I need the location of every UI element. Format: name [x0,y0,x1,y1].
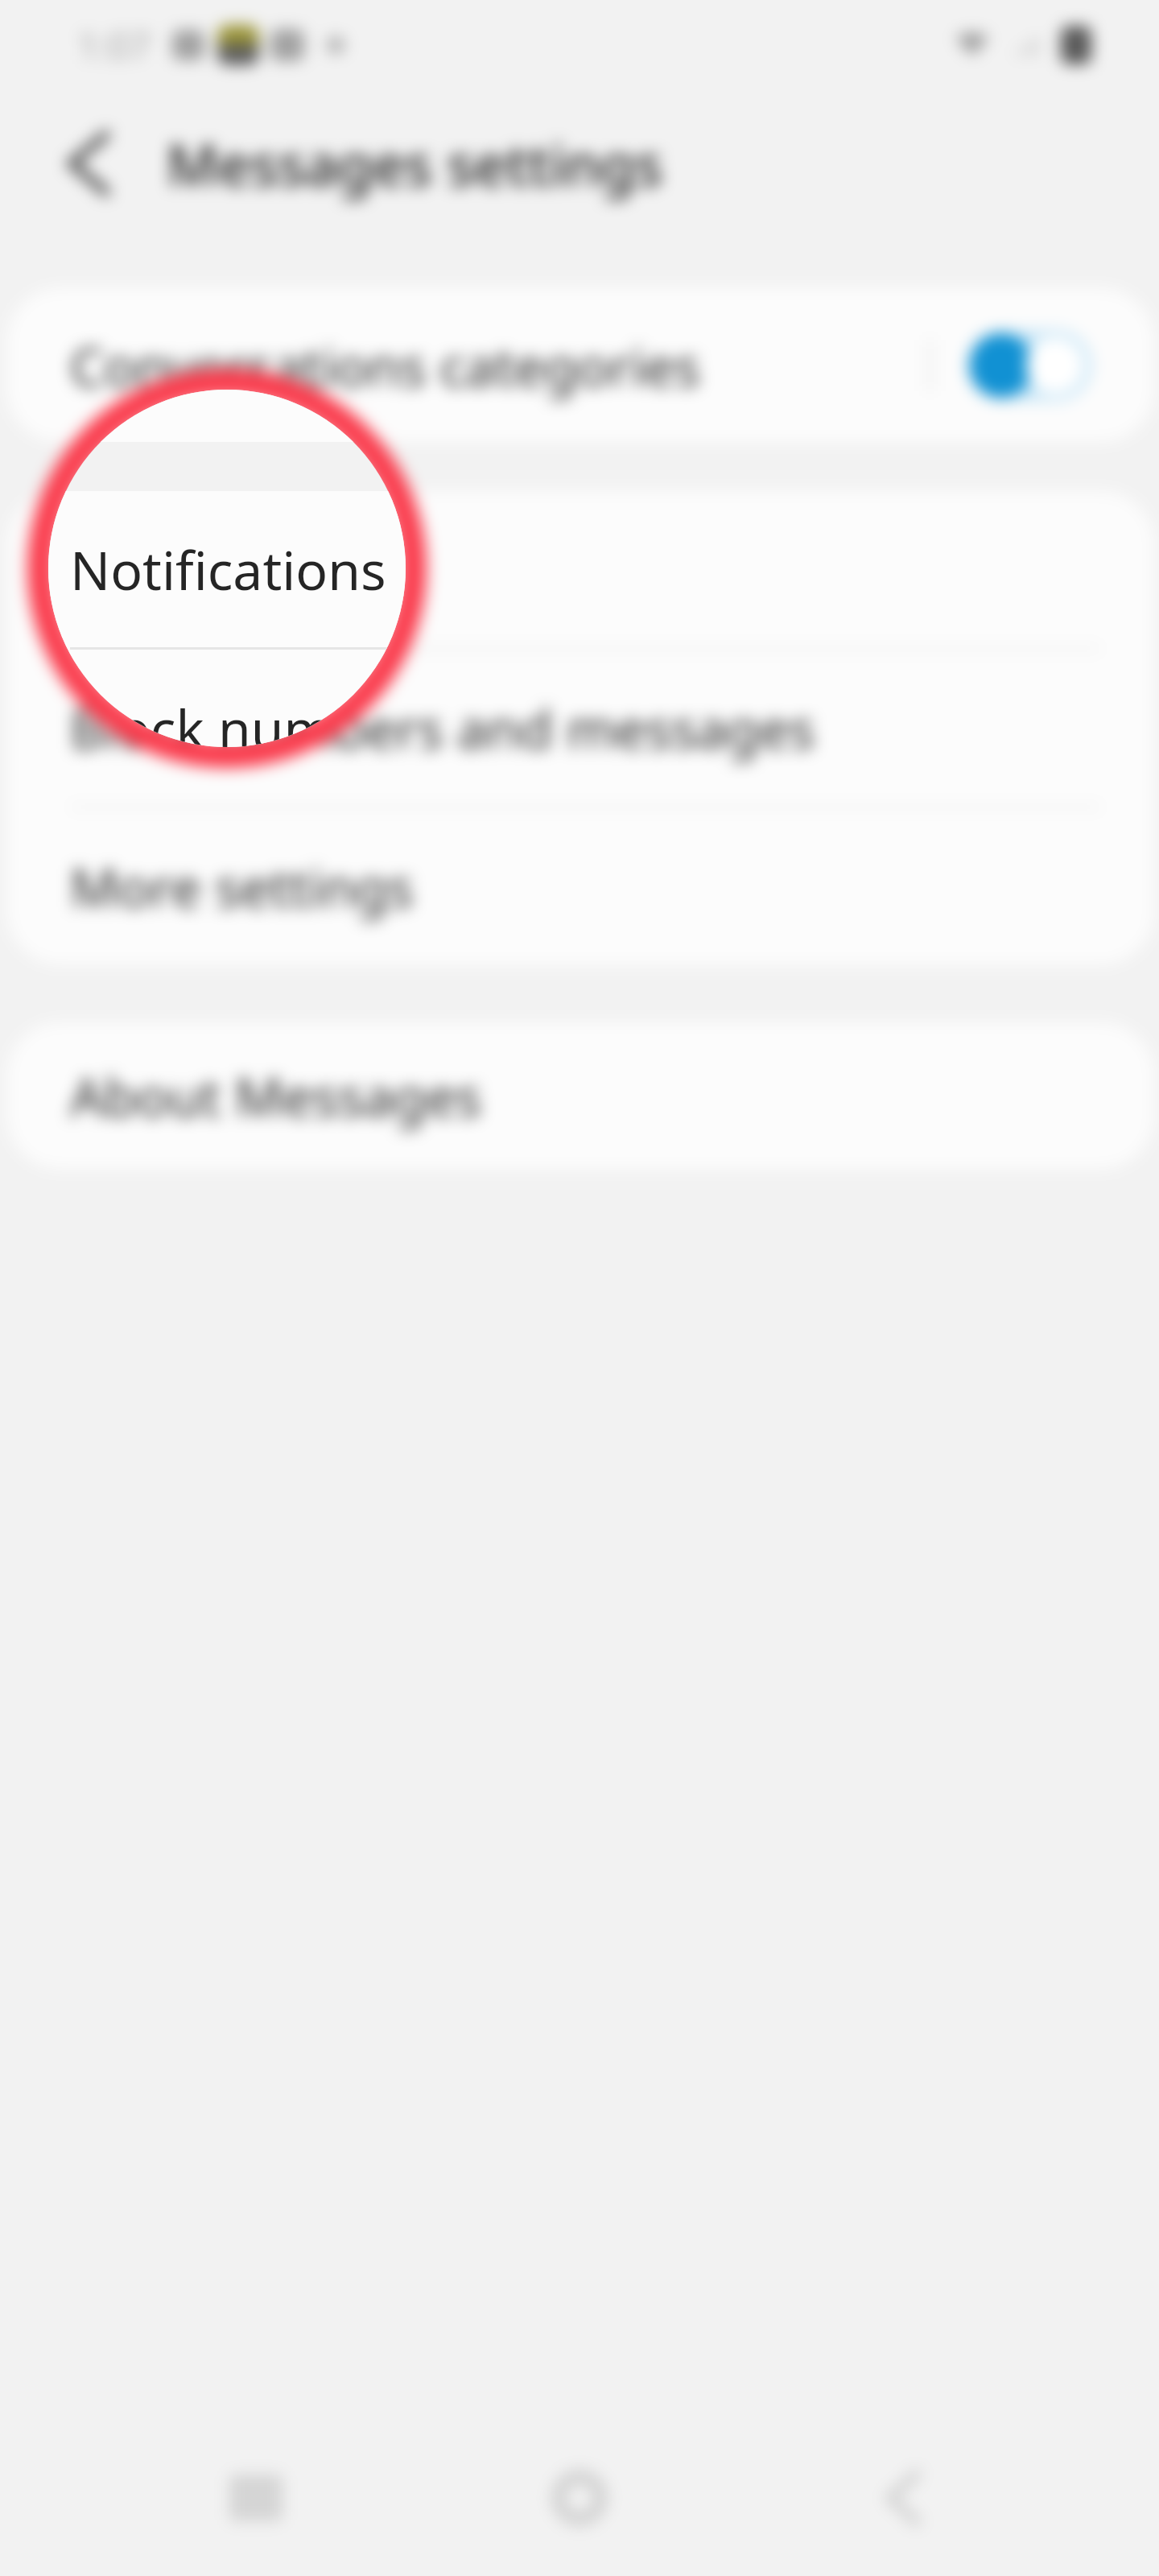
staticText: 1:07 [77,20,151,71]
button[interactable]: Conversations categories toggle [967,330,1091,401]
other: Back [851,2446,955,2550]
staticText: About Messages [70,1059,482,1132]
button[interactable]: Conversations categories [7,288,1154,442]
other: Conversations categories toggle [967,330,1091,401]
staticText: Messages settings [167,126,663,202]
staticText: Notifications [70,533,386,605]
staticText: Messages settings [167,126,663,202]
staticText: About Messages [70,1059,482,1132]
button[interactable]: Back [851,2446,955,2550]
button[interactable]: More settings [7,808,1154,964]
staticText: More settings [70,850,414,923]
staticText: 1:07 [77,20,151,71]
button[interactable]: Notifications [7,491,1154,647]
other: Navigate up [0,103,167,224]
other: Recent apps [204,2446,308,2550]
staticText: Conversations categories [70,329,700,402]
button[interactable]: Navigate up [0,103,167,224]
staticText: Block numbers and messages [70,691,815,764]
staticText: Conversations categories [70,329,700,402]
staticText: Block numbers and messages [70,691,815,764]
other: Home [527,2446,632,2550]
button[interactable]: Block numbers and messages [7,650,1154,806]
button[interactable]: Recent apps [204,2446,308,2550]
button[interactable]: About Messages [7,1022,1154,1169]
button[interactable]: Home [527,2446,632,2550]
staticText: Notifications [70,533,386,605]
staticText: More settings [70,850,414,923]
